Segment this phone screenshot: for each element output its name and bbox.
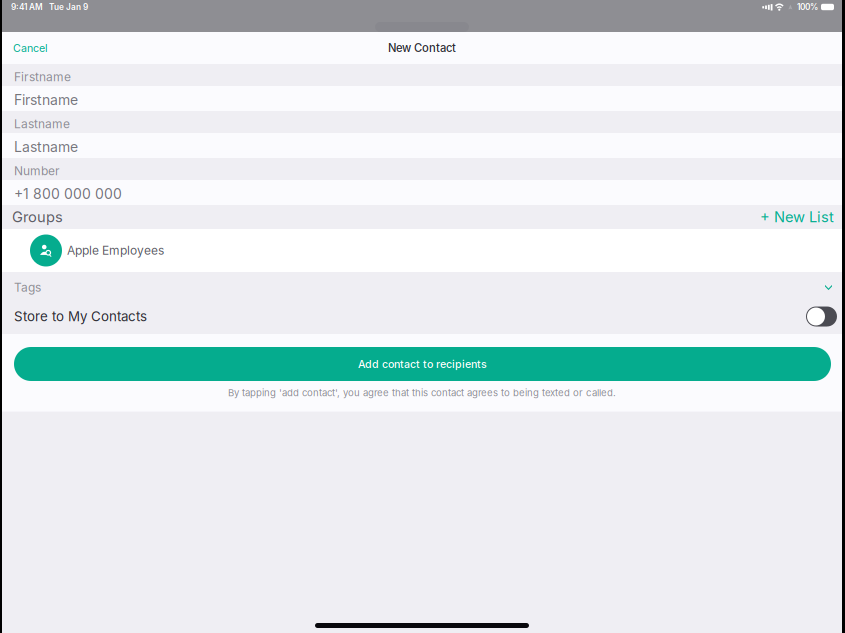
staticText: Tue Jan 9 [49, 2, 88, 12]
button[interactable]: Add contact to recipients [14, 347, 831, 381]
staticText: +1 800 000 000 [14, 185, 122, 202]
staticText: 100% [797, 2, 818, 12]
staticText: Lastname [14, 138, 78, 155]
staticText: Groups [12, 208, 63, 226]
staticText: Apple Employees [67, 243, 164, 258]
button[interactable]: Cancel [2, 33, 59, 62]
staticText: Add contact to recipients [358, 357, 487, 370]
staticText: Number [14, 164, 60, 178]
button[interactable]: Store to My Contacts [806, 306, 837, 326]
staticText: + New List [760, 208, 834, 226]
staticText: New Contact [388, 41, 456, 55]
button[interactable]: Apple Employees [2, 229, 842, 272]
staticText: Tags [14, 280, 41, 295]
button[interactable]: Expand tags [819, 279, 838, 296]
staticText: 9:41 AM [11, 2, 43, 12]
staticText: Firstname [14, 91, 78, 108]
staticText: Firstname [14, 70, 71, 84]
staticText: By tapping 'add contact', you agree that… [228, 387, 616, 399]
staticText: Store to My Contacts [14, 308, 147, 324]
staticText: Lastname [14, 117, 70, 131]
staticText: Cancel [13, 41, 48, 54]
button[interactable]: + New List [754, 204, 840, 230]
